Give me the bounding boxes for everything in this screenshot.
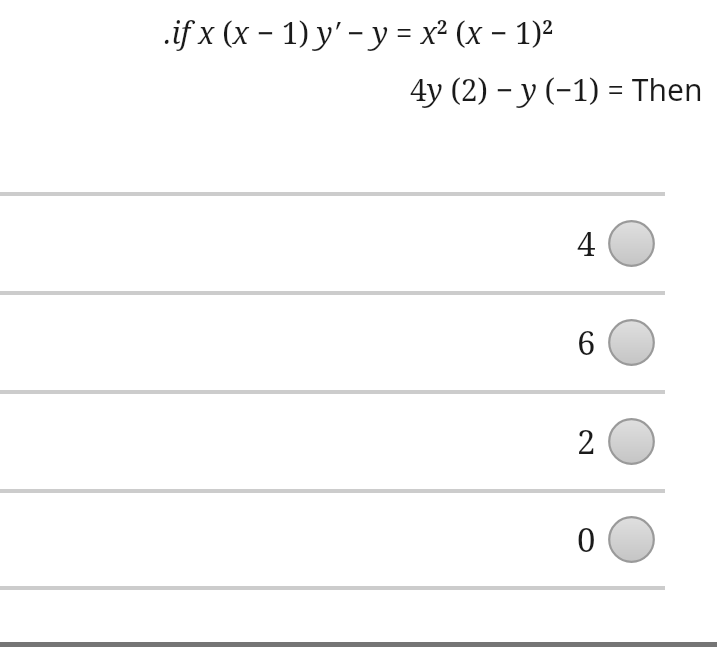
staticText: 6 xyxy=(577,320,596,365)
staticText: .if x (x − 1) y′ − y = x2 (x − 1)2 xyxy=(164,12,553,53)
other: Select answer xyxy=(608,516,655,563)
other: Select answer xyxy=(608,418,655,465)
button[interactable]: 4 xyxy=(0,196,717,291)
staticText: 2 xyxy=(577,419,596,464)
staticText: 4y (2) − y (−1) = Then xyxy=(410,69,703,110)
staticText: 0 xyxy=(577,517,596,562)
button[interactable]: 6 xyxy=(0,295,717,390)
button[interactable]: 2 xyxy=(0,394,717,489)
button[interactable]: 0 xyxy=(0,493,717,586)
staticText: 4 xyxy=(577,221,596,266)
other: Select answer xyxy=(608,220,655,267)
other: Select answer xyxy=(608,319,655,366)
